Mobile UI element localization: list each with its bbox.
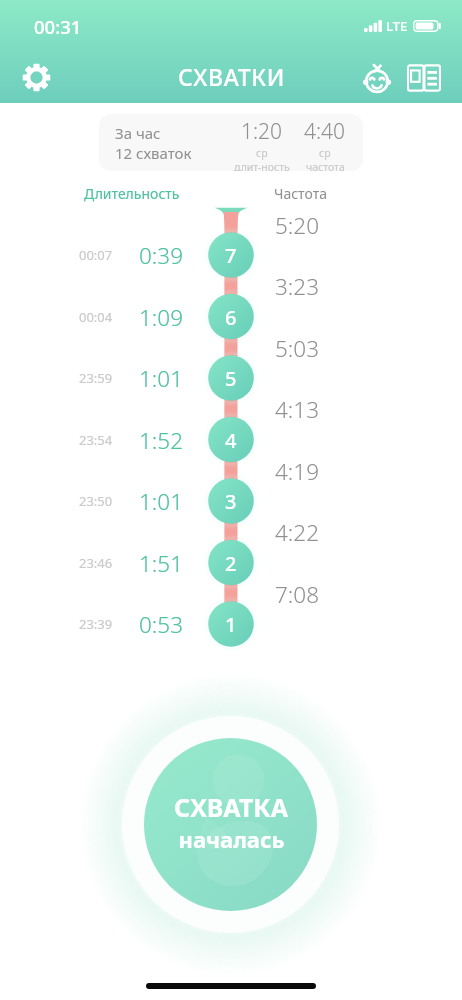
staticText: 00:07 [79, 246, 113, 264]
staticText: 1:01 [139, 486, 184, 517]
staticText: 5 [225, 365, 237, 392]
staticText: 1:51 [139, 548, 184, 579]
staticText: 1:01 [139, 363, 184, 394]
button[interactable]: 5 [208, 355, 254, 401]
staticText: 3 [225, 488, 237, 515]
staticText: 5:20 [275, 210, 320, 241]
button[interactable]: 1 [208, 601, 254, 647]
staticText: 7 [225, 242, 237, 269]
staticText: 00:04 [79, 308, 113, 326]
staticText: частота [306, 160, 345, 171]
staticText: LTE [386, 17, 408, 35]
staticText: 2 [225, 550, 237, 577]
staticText: Частота [274, 184, 327, 203]
button[interactable]: 4 [208, 417, 254, 463]
staticText: 0:53 [139, 609, 184, 640]
staticText: 4 [225, 427, 237, 454]
button[interactable]: Guide [402, 56, 446, 100]
button[interactable]: 2 [208, 540, 254, 586]
staticText: СХВАТКИ [178, 61, 285, 92]
staticText: Длительность [84, 184, 180, 203]
staticText: 23:39 [79, 615, 113, 633]
staticText: 4:40 [304, 117, 346, 146]
staticText: 1:52 [139, 425, 184, 456]
staticText: За час [115, 123, 161, 143]
button[interactable]: Settings [14, 55, 58, 99]
staticText: 6 [225, 304, 237, 331]
button[interactable]: СХВАТКА [144, 738, 317, 911]
staticText: 23:54 [79, 431, 113, 449]
button[interactable]: За час [99, 114, 363, 171]
button[interactable]: 7 [208, 232, 254, 278]
button[interactable]: 3 [208, 478, 254, 524]
staticText: 1:20 [241, 117, 283, 146]
staticText: 23:59 [79, 369, 113, 387]
staticText: 7:08 [275, 579, 320, 610]
staticText: 23:46 [79, 554, 113, 572]
staticText: 12 схваток [115, 143, 192, 163]
button[interactable]: Baby [355, 57, 399, 101]
staticText: 1:09 [139, 302, 184, 333]
staticText: 5:03 [275, 333, 320, 364]
staticText: 3:23 [275, 271, 320, 302]
staticText: 4:13 [275, 394, 320, 425]
button[interactable]: 6 [208, 294, 254, 340]
staticText: 23:50 [79, 492, 113, 510]
staticText: 1 [225, 611, 237, 638]
staticText: 00:31 [34, 14, 82, 39]
staticText: ср [319, 146, 331, 160]
staticText: 4:22 [275, 517, 320, 548]
staticText: СХВАТКА [174, 790, 288, 824]
staticText: длит-ность [234, 160, 290, 171]
staticText: 0:39 [139, 240, 184, 271]
staticText: 4:19 [275, 456, 320, 487]
staticText: ср [256, 146, 268, 160]
staticText: началась [178, 824, 285, 854]
